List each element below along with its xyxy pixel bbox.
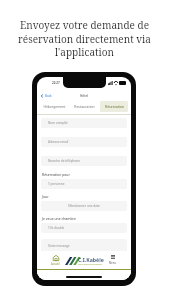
staticText: Restauration (74, 104, 95, 109)
button[interactable]: Numéro de téléphone (41, 156, 127, 166)
staticText: Votre message (48, 244, 70, 248)
staticText: 1 personne (48, 182, 65, 186)
staticText: Nom complet (48, 121, 68, 125)
button[interactable]: Menu (95, 251, 131, 269)
button[interactable]: Hébergement (40, 101, 68, 112)
staticText: Envoyez votre demande de réservation dir… (8, 18, 161, 59)
button[interactable]: Sélectionner une date (41, 201, 127, 211)
staticText: Sélectionner une date (68, 204, 100, 208)
button[interactable]: 1 lit double (41, 223, 127, 233)
button[interactable]: Nom complet (41, 118, 127, 128)
staticText: Numéro de téléphone (48, 159, 80, 163)
staticText: Adresse email (48, 140, 69, 144)
staticText: 22:27 (52, 81, 60, 85)
button[interactable]: Restauration (70, 101, 98, 112)
button[interactable]: Back (40, 94, 52, 98)
other: Accueil (53, 255, 59, 261)
staticText: Votre guide touristique (78, 263, 102, 266)
staticText: 1 lit double (48, 226, 65, 230)
staticText: Accueil (51, 262, 60, 266)
staticText: Réservation (105, 104, 124, 109)
staticText: Menu (109, 261, 117, 265)
staticText: Jour (42, 194, 49, 199)
button[interactable]: Adresse email (41, 137, 127, 147)
staticText: Hôtel (80, 94, 89, 98)
staticText: Back (45, 94, 52, 98)
other: Menu (111, 255, 115, 259)
staticText: Hébergement (43, 104, 66, 109)
staticText: Réservation pour (42, 172, 70, 177)
button[interactable]: Réservation (100, 101, 128, 112)
button[interactable]: Votre message (41, 239, 127, 252)
staticText: Je veux une chambre (42, 216, 76, 221)
staticText: C.I.Kabèle (78, 256, 104, 263)
button[interactable]: Accueil (37, 251, 73, 269)
button[interactable]: 1 personne (41, 179, 127, 189)
